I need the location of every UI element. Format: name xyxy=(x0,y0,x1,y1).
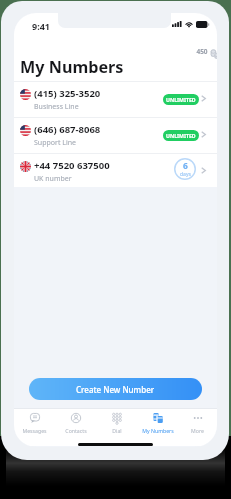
staticText: My Numbers xyxy=(20,56,124,78)
button[interactable]: Dial xyxy=(96,409,137,446)
button[interactable]: Contacts xyxy=(55,409,96,446)
staticText: Business Line xyxy=(34,102,79,112)
button[interactable]: More xyxy=(178,409,217,446)
staticText: +44 7520 637500 xyxy=(34,159,110,172)
staticText: 9:41 xyxy=(32,20,50,32)
staticText: Dial xyxy=(112,427,122,434)
button[interactable]: Messages xyxy=(14,409,55,446)
button[interactable]: Create New Number xyxy=(29,378,202,400)
staticText: UNLIMITED xyxy=(166,132,196,139)
staticText: days xyxy=(180,171,191,178)
staticText: Create New Number xyxy=(76,384,155,395)
staticText: Messages xyxy=(22,427,47,434)
staticText: (646) 687-8068 xyxy=(34,123,101,136)
staticText: My Numbers xyxy=(142,427,174,434)
staticText: UNLIMITED xyxy=(166,96,196,103)
staticText: Support Line xyxy=(34,138,76,148)
button[interactable]: Credits 450 xyxy=(192,33,212,58)
staticText: 6 xyxy=(183,160,188,172)
staticText: Contacts xyxy=(65,427,87,434)
staticText: More xyxy=(191,427,204,434)
button[interactable]: (646) 687-8068 xyxy=(14,117,217,153)
staticText: UK number xyxy=(34,174,72,184)
button[interactable]: My Numbers xyxy=(137,409,178,446)
staticText: (415) 325-3520 xyxy=(34,87,101,100)
button[interactable]: (415) 325-3520 xyxy=(14,81,217,117)
staticText: 450 xyxy=(193,47,211,56)
button[interactable]: +44 7520 637500 xyxy=(14,153,217,189)
